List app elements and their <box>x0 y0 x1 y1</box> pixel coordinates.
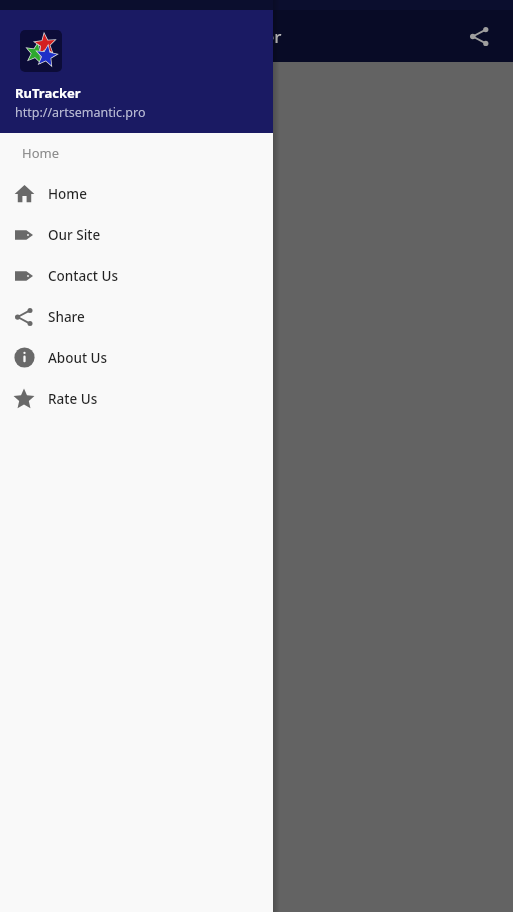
button[interactable]: About Us <box>0 337 273 378</box>
button[interactable]: Share <box>0 296 273 337</box>
staticText: RuTracker <box>200 25 282 48</box>
staticText: Home <box>22 144 59 162</box>
button[interactable]: Our Site <box>0 214 273 255</box>
button[interactable]: Share <box>457 14 501 58</box>
staticText: Share <box>48 308 85 326</box>
staticText: Rate Us <box>48 390 98 408</box>
button[interactable]: Contact Us <box>0 255 273 296</box>
staticText: About Us <box>48 349 108 367</box>
button[interactable] <box>0 62 513 912</box>
staticText: https://rutracker.org/forum/browse.php? <box>16 134 283 152</box>
staticText: Home <box>48 185 87 203</box>
staticText: RuTracker <box>15 84 81 102</box>
button[interactable]: Home <box>0 173 273 214</box>
staticText: redirect=%2Findex.php&b=4/ 的网页无法加载, <box>16 157 302 175</box>
staticText: Our Site <box>48 226 101 244</box>
staticText: Contact Us <box>48 267 119 285</box>
staticText: http://artsemantic.pro <box>15 104 146 121</box>
button[interactable]: Rate Us <box>0 378 273 419</box>
